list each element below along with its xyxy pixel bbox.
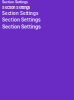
staticText: Section Settings [2,5,30,10]
staticText: Section Settings [2,24,41,30]
staticText: Section Settings [2,17,41,23]
staticText: Section Settings [2,11,38,16]
staticText: Section Settings [2,0,28,4]
